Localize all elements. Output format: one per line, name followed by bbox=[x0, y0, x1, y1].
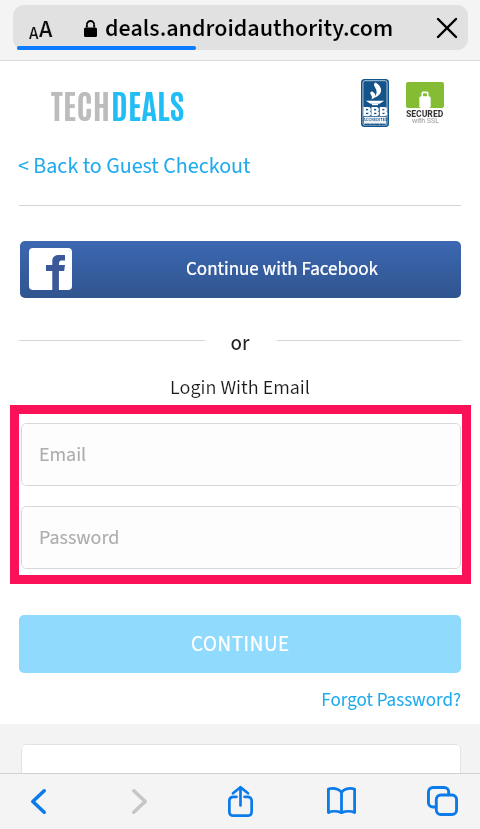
staticText: Continue with Facebook bbox=[186, 256, 378, 283]
button[interactable]: Forgot Password? bbox=[0, 687, 461, 714]
button[interactable]: Password bbox=[21, 506, 461, 569]
button[interactable]: Bookmarks bbox=[309, 773, 373, 829]
staticText: with SSL bbox=[412, 117, 439, 125]
button[interactable]: Stop loading bbox=[430, 11, 464, 45]
staticText: deals.androidauthority.com bbox=[105, 11, 394, 45]
button[interactable]: Tabs bbox=[410, 773, 474, 829]
staticText: CONTINUE bbox=[191, 629, 290, 659]
button[interactable]: CONTINUE bbox=[19, 615, 461, 673]
staticText: Login With Email bbox=[0, 374, 480, 402]
staticText: or bbox=[0, 328, 480, 358]
button[interactable]: Share bbox=[208, 773, 272, 829]
button[interactable]: Continue with Facebook bbox=[20, 241, 461, 298]
button[interactable]: Forward bbox=[107, 773, 171, 829]
staticText: TECH bbox=[51, 82, 111, 126]
staticText: ACCREDITED bbox=[363, 117, 388, 122]
staticText: A bbox=[39, 12, 53, 46]
button[interactable]: Email bbox=[21, 423, 461, 486]
staticText: DEALS bbox=[111, 82, 185, 126]
button[interactable]: < Back to Guest Checkout bbox=[18, 150, 251, 181]
button[interactable]: Back bbox=[6, 773, 70, 829]
staticText: BUSINESS bbox=[365, 122, 385, 127]
button[interactable]: A bbox=[13, 5, 468, 50]
staticText: Email bbox=[39, 441, 87, 469]
staticText: A bbox=[29, 22, 39, 46]
staticText: Password bbox=[39, 524, 120, 552]
staticText: BBB bbox=[363, 104, 388, 119]
staticText: SECURED bbox=[406, 109, 444, 119]
